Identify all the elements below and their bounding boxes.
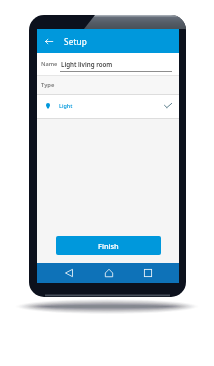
button[interactable]: Name (37, 53, 179, 75)
button[interactable]: Back (40, 29, 58, 53)
staticText: Finish (98, 241, 119, 251)
staticText: Light living room (61, 60, 113, 68)
staticText: Setup (64, 36, 87, 47)
staticText: Type (41, 81, 55, 89)
button[interactable]: Recent apps (141, 263, 155, 283)
staticText: Light (59, 102, 73, 109)
button[interactable]: Light (37, 95, 179, 118)
staticText: Name (41, 60, 58, 68)
button[interactable]: Home (102, 263, 116, 283)
button[interactable]: Back (62, 263, 76, 283)
button[interactable]: Finish (56, 236, 161, 255)
